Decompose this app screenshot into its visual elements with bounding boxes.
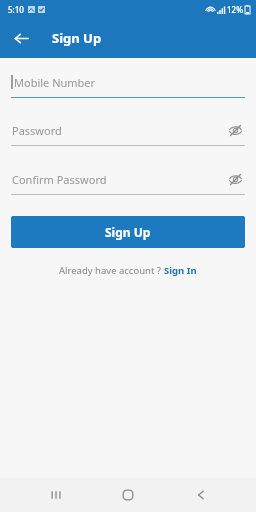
staticText: Password — [12, 123, 62, 138]
button[interactable]: Sign Up — [11, 216, 245, 248]
button[interactable]: Sign In — [164, 264, 197, 277]
staticText: Mobile Number — [14, 75, 96, 90]
staticText: Sign Up — [52, 29, 102, 47]
staticText: Confirm Password — [12, 172, 107, 187]
button[interactable]: Home — [111, 478, 145, 512]
staticText: 12% — [227, 4, 243, 15]
staticText: Already have account ? — [59, 264, 164, 277]
button[interactable]: Toggle password visibility — [225, 169, 245, 189]
button[interactable]: Back — [184, 478, 218, 512]
staticText: 5:10 — [8, 4, 24, 15]
staticText: Sign In — [164, 264, 197, 277]
button[interactable]: Toggle password visibility — [225, 120, 245, 140]
staticText: Sign Up — [105, 224, 151, 240]
button[interactable]: Recents — [39, 478, 73, 512]
button[interactable]: Back — [8, 25, 34, 51]
